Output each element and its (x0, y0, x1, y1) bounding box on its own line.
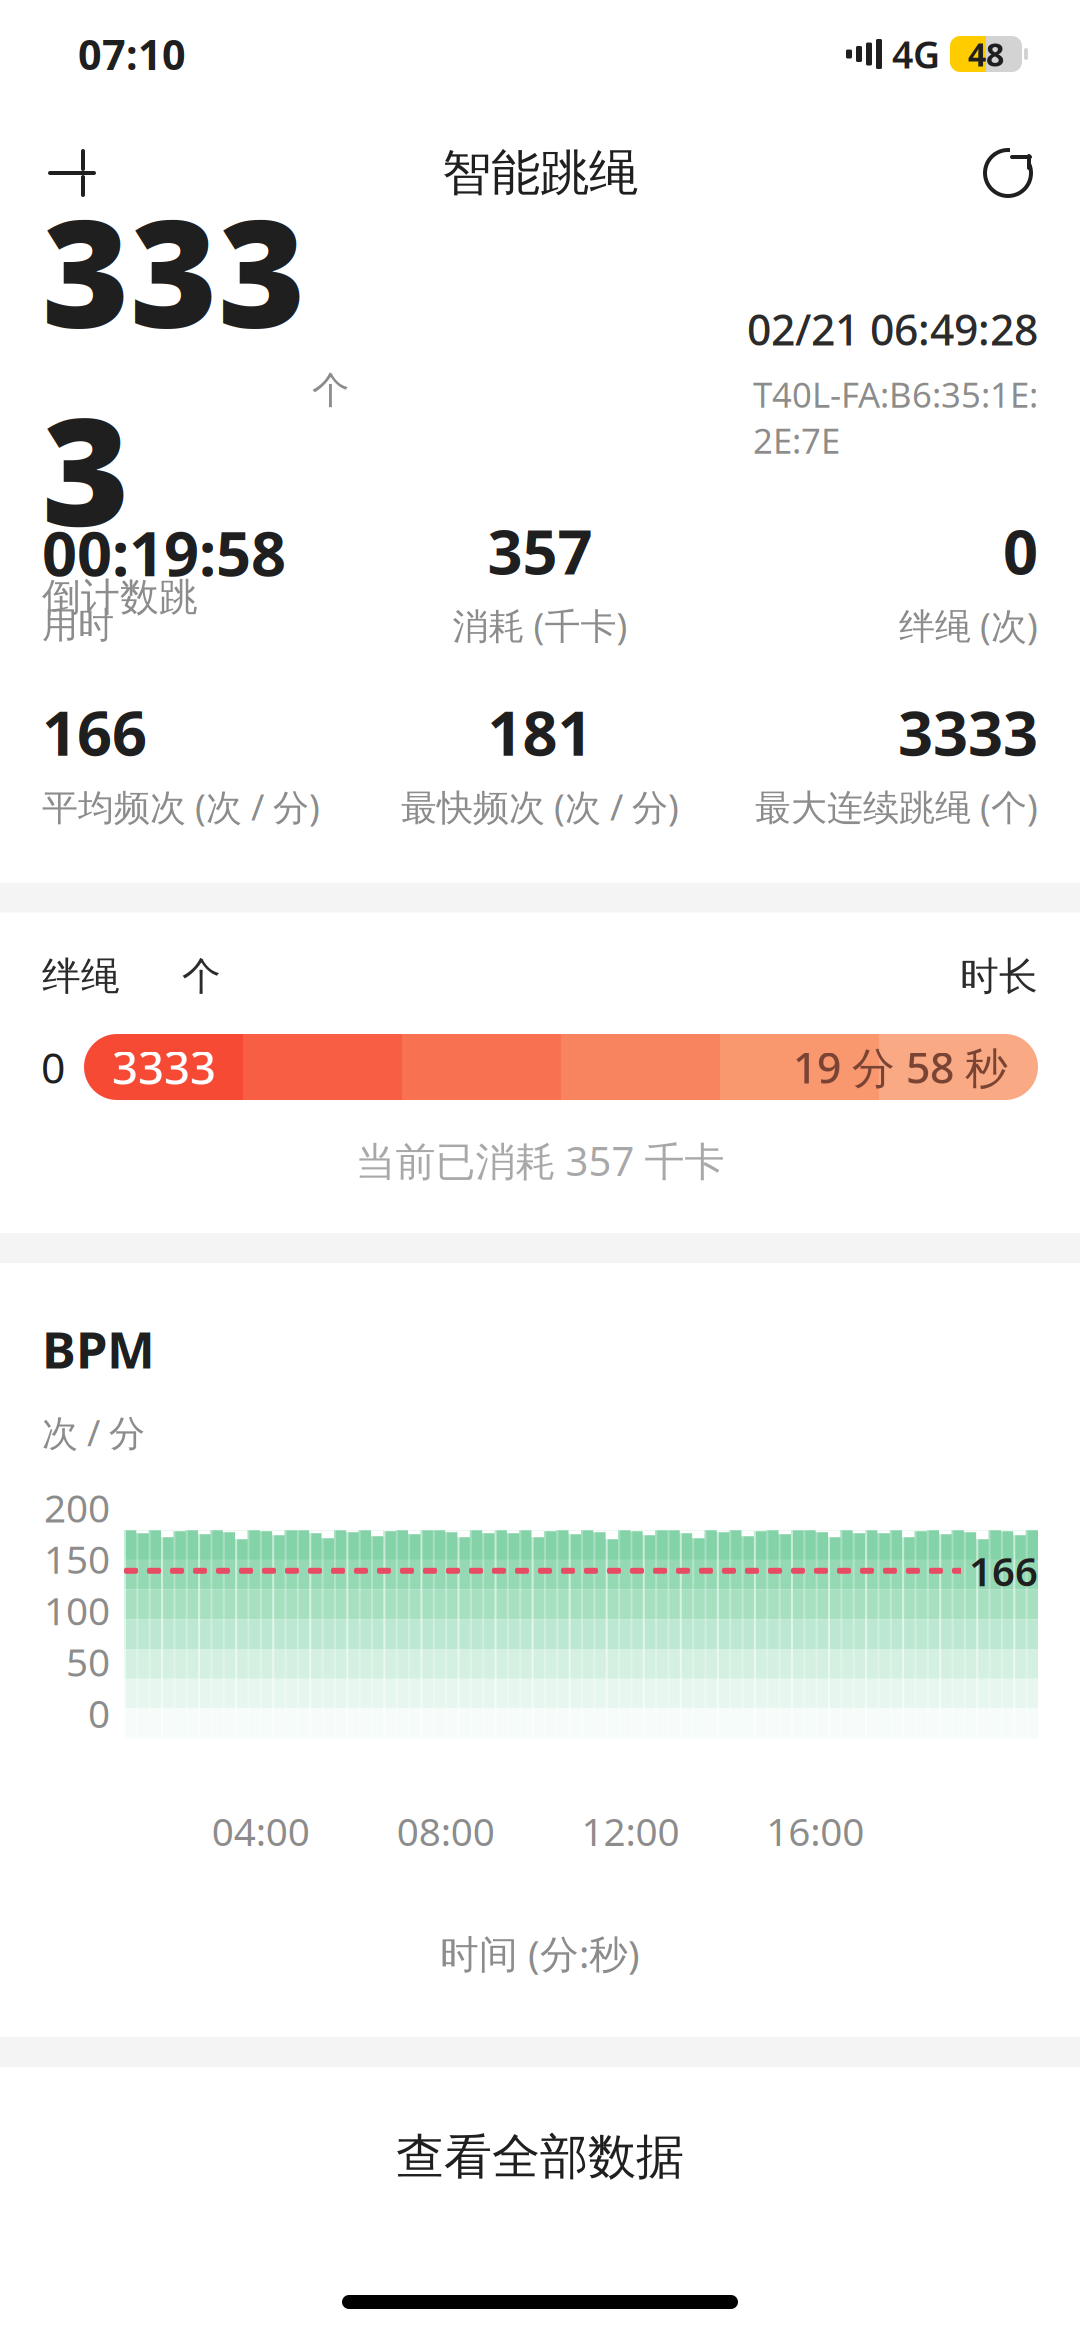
staticText: 166 (42, 691, 147, 773)
staticText: 16:00 (766, 1805, 864, 1857)
staticText: 绊绳 (次) (899, 601, 1038, 649)
button[interactable]: 同步数据 (960, 125, 1056, 221)
staticText: 3333 (112, 1037, 216, 1097)
staticText: 07:10 (78, 27, 186, 81)
staticText: 3333 (898, 691, 1038, 773)
staticText: 04:00 (212, 1805, 310, 1857)
staticText: 绊绳 (42, 952, 120, 1000)
staticText: T40L-FA:B6:35:1E:2E:7E (753, 371, 1038, 463)
staticText: 100 (44, 1584, 110, 1636)
button[interactable]: 查看全部数据 (0, 2067, 1080, 2247)
staticText: 时长 (960, 952, 1038, 1000)
staticText: 查看全部数据 (396, 2127, 684, 2186)
staticText: BPM (42, 1315, 155, 1382)
staticText: 消耗 (千卡) (452, 601, 627, 649)
staticText: 48 (968, 33, 1004, 75)
staticText: 个 (312, 367, 349, 413)
staticText: 个 (182, 952, 221, 1000)
staticText: 00:19:58 (42, 512, 286, 593)
staticText: 用时 (42, 603, 114, 647)
staticText: 当前已消耗 357 千卡 (355, 1134, 724, 1187)
button[interactable]: 返回 (24, 125, 120, 221)
staticText: 0 (1003, 510, 1038, 591)
staticText: 最快频次 (次 / 分) (401, 783, 679, 830)
staticText: 3333 (42, 171, 306, 567)
staticText: 200 (44, 1482, 110, 1533)
staticText: 次 / 分 (42, 1408, 145, 1456)
staticText: 最大连续跳绳 (个) (755, 783, 1038, 830)
staticText: 19 分 58 秒 (793, 1039, 1008, 1095)
staticText: 时间 (分:秒) (440, 1928, 640, 1979)
staticText: 357 (487, 510, 592, 591)
staticText: 12:00 (581, 1805, 679, 1857)
staticText: 0 (88, 1687, 110, 1738)
staticText: 08:00 (397, 1805, 495, 1857)
staticText: 倒计数跳 (42, 574, 198, 621)
staticText: 50 (66, 1636, 110, 1687)
staticText: 181 (487, 691, 592, 773)
staticText: 4G (892, 29, 940, 79)
staticText: 166 (969, 1544, 1038, 1597)
staticText: 0 (41, 1039, 65, 1095)
staticText: 智能跳绳 (442, 143, 638, 203)
staticText: 平均频次 (次 / 分) (42, 783, 320, 830)
staticText: 150 (44, 1533, 110, 1584)
staticText: 02/21 06:49:28 (747, 301, 1038, 357)
